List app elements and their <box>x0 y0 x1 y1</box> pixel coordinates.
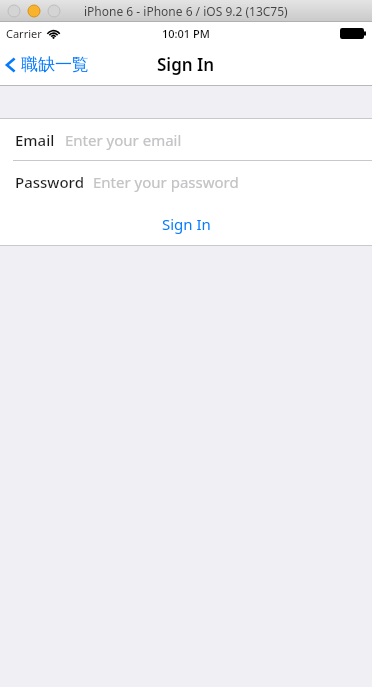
staticText: Sign In <box>157 53 215 76</box>
button[interactable]: Minimize <box>28 5 40 17</box>
button[interactable]: Email <box>0 119 372 160</box>
button[interactable]: Sign In <box>0 202 372 245</box>
staticText: Enter your password <box>93 172 239 192</box>
staticText: Email <box>15 130 55 150</box>
staticText: Password <box>15 172 84 192</box>
staticText: Sign In <box>162 214 211 234</box>
button[interactable]: Password <box>0 161 372 202</box>
button[interactable]: Back <box>5 54 89 75</box>
staticText: iPhone 6 - iPhone 6 / iOS 9.2 (13C75) <box>84 3 288 19</box>
staticText: 10:01 PM <box>162 26 210 41</box>
other: Back <box>5 55 17 75</box>
staticText: Carrier <box>6 26 42 41</box>
staticText: 職缺一覧 <box>21 54 89 75</box>
staticText: Enter your email <box>65 130 182 150</box>
button[interactable]: Zoom <box>48 5 60 17</box>
button[interactable]: Close <box>8 5 20 17</box>
